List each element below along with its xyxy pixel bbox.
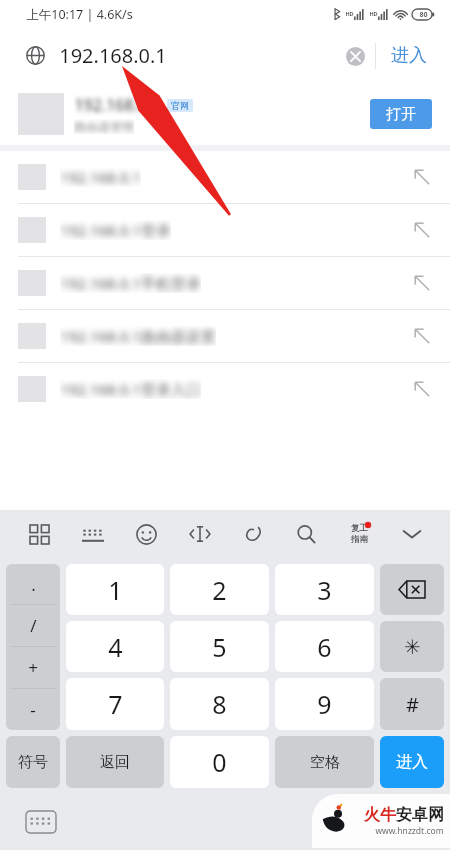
staticText: 192.168.0.1	[59, 42, 167, 69]
staticText: ✳	[404, 635, 421, 658]
staticText: www.hnzzdt.com	[375, 825, 444, 837]
button[interactable]: #	[380, 678, 444, 730]
other: Fill search	[412, 326, 432, 346]
staticText: 打开	[386, 105, 416, 124]
staticText: 80	[419, 10, 428, 20]
staticText: 返回	[100, 753, 130, 772]
staticText: 7	[108, 687, 123, 721]
staticText: 官网	[171, 100, 189, 111]
button[interactable]: Switch keyboard	[26, 811, 56, 833]
button[interactable]: Search	[279, 510, 332, 558]
staticText: 4	[108, 630, 123, 664]
staticText: 192.168.0.1路由器设置	[60, 326, 216, 346]
staticText: .	[31, 573, 36, 596]
staticText: 3	[317, 573, 332, 607]
staticText: 空格	[310, 753, 340, 772]
staticText: 复工	[351, 523, 368, 534]
button[interactable]: -	[6, 689, 60, 730]
staticText: 192.168.0.1登录	[60, 220, 171, 240]
button[interactable]: 4	[66, 621, 164, 672]
button[interactable]: 2	[170, 564, 269, 615]
staticText: 2	[212, 573, 227, 607]
button[interactable]: 打开	[370, 99, 432, 129]
button[interactable]: Cursor	[173, 510, 226, 558]
button[interactable]: 192.168.0.1路由器设置	[0, 310, 450, 362]
staticText: HD	[369, 10, 378, 17]
button[interactable]: 1	[66, 564, 164, 615]
staticText: 0	[212, 745, 227, 779]
staticText: 192.168.0.1	[60, 167, 141, 187]
button[interactable]: Keyboard	[66, 510, 120, 558]
button[interactable]: 192.168.0.1登录入口	[0, 363, 450, 415]
button[interactable]: 9	[275, 678, 374, 730]
button[interactable]: 192.168.0.1手机登录	[0, 257, 450, 309]
staticText: 192.168.0.1手机登录	[60, 273, 201, 293]
staticText: 6	[317, 630, 332, 664]
button[interactable]: 7	[66, 678, 164, 730]
staticText: -	[30, 698, 36, 721]
staticText: 192.168.0.1	[74, 94, 161, 116]
button[interactable]: 0	[170, 736, 269, 788]
other: Fill search	[412, 379, 432, 399]
button[interactable]: /	[6, 605, 60, 646]
button[interactable]: 6	[275, 621, 374, 672]
staticText: #	[406, 691, 419, 718]
staticText: 9	[317, 687, 332, 721]
staticText: 路由器管理	[74, 119, 134, 134]
other: Fill search	[412, 220, 432, 240]
button[interactable]: +	[6, 647, 60, 688]
button[interactable]: 空格	[275, 736, 374, 788]
staticText: 进入	[391, 44, 427, 67]
button[interactable]: Emoji	[120, 510, 173, 558]
other: Fill search	[412, 167, 432, 187]
button[interactable]: 192.168.0.1	[0, 151, 450, 203]
staticText: 符号	[18, 753, 48, 772]
button[interactable]: Apps	[12, 510, 66, 558]
staticText: 192.168.0.1登录入口	[60, 379, 201, 399]
button[interactable]: 进入	[380, 736, 444, 788]
other: Fill search	[412, 273, 432, 293]
button[interactable]: Backspace	[380, 564, 444, 615]
staticText: +	[28, 656, 38, 679]
staticText: 上午10:17 | 4.6K/s	[26, 6, 133, 23]
button[interactable]: 8	[170, 678, 269, 730]
staticText: 指南	[351, 534, 368, 545]
button[interactable]: 5	[170, 621, 269, 672]
button[interactable]: Clip	[226, 510, 279, 558]
staticText: 进入	[396, 752, 428, 772]
button[interactable]: 192.168.0.1登录	[0, 204, 450, 256]
button[interactable]: .	[6, 564, 60, 604]
button[interactable]: Guide	[332, 510, 385, 558]
staticText: HD	[345, 10, 354, 17]
button[interactable]: 进入	[376, 31, 442, 80]
staticText: 5	[212, 630, 227, 664]
button[interactable]: 符号	[6, 736, 60, 788]
button[interactable]: Collapse	[385, 510, 438, 558]
staticText: 火牛	[364, 805, 396, 825]
staticText: /	[30, 614, 37, 637]
button[interactable]: Clear	[335, 36, 375, 76]
staticText: 安卓网	[396, 805, 444, 825]
button[interactable]: ✳	[380, 621, 444, 672]
button[interactable]: 返回	[66, 736, 164, 788]
staticText: 8	[212, 687, 227, 721]
button[interactable]: 3	[275, 564, 374, 615]
staticText: 1	[108, 573, 123, 607]
